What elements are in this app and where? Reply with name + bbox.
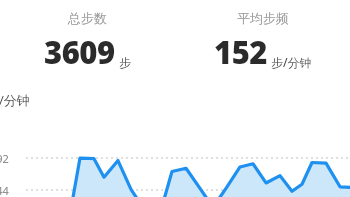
staticText: 步 [119, 55, 131, 70]
button[interactable]: 总步数 [0, 0, 175, 73]
button[interactable]: 平均步频 [175, 0, 350, 73]
staticText: 步/分钟 [271, 54, 312, 70]
staticText: 平均步频 [237, 10, 289, 26]
staticText: 144 [0, 183, 9, 197]
staticText: 总步数 [68, 10, 107, 26]
staticText: 3609 [44, 31, 115, 73]
staticText: 步/分钟 [0, 91, 30, 109]
staticText: 192 [0, 151, 9, 166]
staticText: 152 [214, 31, 267, 73]
